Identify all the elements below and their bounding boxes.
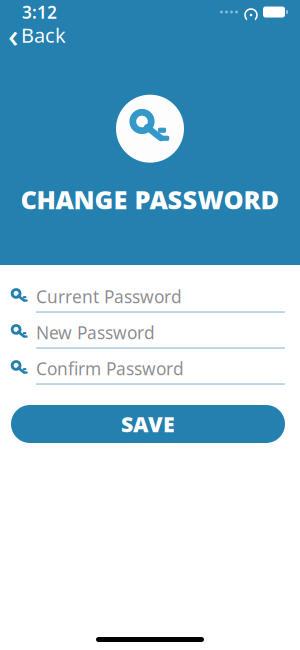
staticText: SAVE: [121, 410, 175, 438]
button[interactable]: Confirm Password: [11, 351, 285, 387]
staticText: Back: [21, 22, 66, 48]
staticText: ‹: [8, 14, 18, 56]
staticText: 3:12: [22, 0, 57, 23]
button[interactable]: ‹: [0, 24, 300, 46]
staticText: CHANGE PASSWORD: [20, 183, 279, 216]
button[interactable]: Current Password: [11, 279, 285, 315]
staticText: New Password: [36, 321, 155, 344]
button[interactable]: SAVE: [11, 405, 285, 443]
button[interactable]: New Password: [11, 315, 285, 351]
staticText: Current Password: [36, 285, 182, 308]
staticText: Confirm Password: [36, 357, 184, 380]
